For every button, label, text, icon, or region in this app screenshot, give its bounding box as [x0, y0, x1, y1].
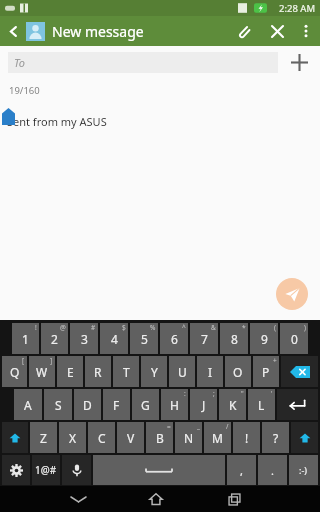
staticText: B	[156, 430, 164, 446]
staticText: 3	[81, 331, 88, 347]
staticText: P	[262, 364, 270, 380]
staticText: :	[184, 389, 186, 398]
button[interactable]: More options	[294, 16, 318, 46]
staticText: 1@#	[35, 463, 57, 477]
button[interactable]: L	[248, 389, 275, 420]
button[interactable]: Add recipient	[278, 46, 320, 78]
button[interactable]: :-)	[289, 455, 318, 485]
button[interactable]: K	[219, 389, 246, 420]
staticText: ?	[273, 430, 279, 446]
button[interactable]: !	[233, 422, 260, 453]
staticText: 19/160	[9, 84, 40, 97]
button[interactable]: U	[169, 356, 195, 387]
button[interactable]: 6	[160, 323, 188, 354]
button[interactable]: P	[253, 356, 279, 387]
staticText: [	[22, 356, 25, 365]
button[interactable]: 4	[100, 323, 128, 354]
button[interactable]: X	[59, 422, 86, 453]
button[interactable]: J	[190, 389, 217, 420]
button[interactable]: C	[88, 422, 115, 453]
button[interactable]: Back	[0, 16, 26, 46]
button[interactable]: 2	[41, 323, 68, 354]
button[interactable]: 9	[250, 323, 278, 354]
button[interactable]: G	[132, 389, 159, 420]
staticText: V	[127, 430, 135, 446]
button[interactable]: ?	[262, 422, 289, 453]
button[interactable]: Close	[260, 16, 294, 46]
staticText: Y	[151, 364, 158, 380]
staticText: 2:28 AM	[279, 2, 316, 15]
button[interactable]: S	[44, 389, 72, 420]
button[interactable]: 1@#	[32, 455, 60, 485]
button[interactable]: Shift	[2, 422, 28, 453]
staticText: A	[24, 397, 32, 413]
staticText: 9	[261, 331, 268, 347]
button[interactable]: E	[57, 356, 83, 387]
staticText: 7	[201, 331, 208, 347]
button[interactable]: Shift	[291, 422, 318, 453]
staticText: (	[274, 323, 276, 332]
button[interactable]: Z	[30, 422, 57, 453]
button[interactable]: 0	[280, 323, 308, 354]
staticText: K	[229, 397, 237, 413]
staticText: )	[304, 323, 306, 332]
button[interactable]: .	[258, 455, 287, 485]
button[interactable]: Q	[2, 356, 27, 387]
button[interactable]: Attach	[226, 16, 260, 46]
button[interactable]: Backspace	[281, 356, 318, 387]
staticText: L	[258, 397, 265, 413]
staticText: R	[94, 364, 102, 380]
staticText: %	[150, 323, 156, 332]
staticText: Sent from my ASUS	[7, 114, 107, 129]
button[interactable]: A	[14, 389, 42, 420]
button[interactable]: Send	[276, 278, 308, 310]
button[interactable]: T	[113, 356, 139, 387]
button[interactable]: O	[225, 356, 251, 387]
button[interactable]: V	[117, 422, 144, 453]
staticText: To	[14, 55, 25, 70]
button[interactable]: To	[8, 52, 278, 73]
staticText: ^	[182, 323, 186, 332]
button[interactable]: Y	[141, 356, 167, 387]
button[interactable]: Voice input	[62, 455, 91, 485]
button[interactable]: 3	[70, 323, 98, 354]
staticText: I	[208, 364, 213, 380]
staticText: E	[67, 364, 74, 380]
staticText: ;	[213, 389, 215, 398]
staticText: *	[242, 323, 246, 332]
button[interactable]: I	[197, 356, 223, 387]
staticText: D	[83, 397, 92, 413]
staticText: X	[69, 430, 77, 446]
staticText: :-)	[299, 464, 308, 476]
staticText: O	[233, 364, 243, 380]
button[interactable]: 1	[12, 323, 39, 354]
button[interactable]: Space	[93, 455, 225, 485]
button[interactable]: 7	[190, 323, 218, 354]
staticText: T	[123, 364, 130, 380]
staticText: H	[170, 397, 179, 413]
button[interactable]: R	[85, 356, 111, 387]
button[interactable]: W	[29, 356, 55, 387]
button[interactable]: N	[175, 422, 202, 453]
staticText: Z	[40, 430, 47, 446]
button[interactable]: ,	[227, 455, 256, 485]
button[interactable]: F	[103, 389, 130, 420]
button[interactable]: M	[204, 422, 231, 453]
button[interactable]: Home	[117, 486, 195, 512]
staticText: G	[141, 397, 150, 413]
button[interactable]: Enter	[277, 389, 318, 420]
staticText: ,	[240, 463, 243, 478]
button[interactable]: Settings	[2, 455, 30, 485]
button[interactable]: B	[146, 422, 173, 453]
staticText: W	[36, 364, 48, 380]
button[interactable]: 8	[220, 323, 248, 354]
staticText: 2	[51, 331, 58, 347]
button[interactable]: 5	[130, 323, 158, 354]
button[interactable]: H	[161, 389, 188, 420]
button[interactable]: D	[74, 389, 101, 420]
button[interactable]: Hide keyboard	[39, 486, 117, 512]
staticText: Q	[10, 364, 20, 380]
staticText: #	[91, 323, 96, 332]
button[interactable]: Recent apps	[195, 486, 273, 512]
staticText: $	[122, 323, 126, 332]
